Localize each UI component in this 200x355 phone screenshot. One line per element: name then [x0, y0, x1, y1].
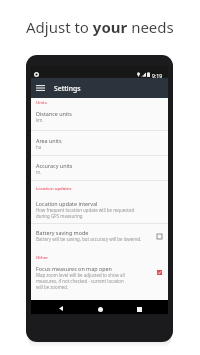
staticText: m.	[36, 169, 143, 175]
staticText: 9:19	[152, 72, 163, 79]
staticText: Location update interval	[36, 200, 98, 207]
staticText: km.	[36, 117, 143, 123]
staticText: Accuracy units	[36, 162, 73, 169]
staticText: Location updates	[36, 185, 72, 191]
button[interactable]: Recent apps	[133, 303, 145, 315]
button[interactable]: Home	[94, 303, 106, 315]
staticText: How frequent location update will be req…	[36, 207, 141, 219]
button[interactable]: Accuracy units	[31, 162, 168, 175]
staticText: Focus measures on map open	[36, 265, 112, 272]
staticText: Map zoom level will be adjusted to show …	[36, 272, 128, 290]
staticText: Area units	[36, 137, 62, 144]
button[interactable]: Back	[55, 302, 67, 314]
button[interactable]: Focus measures on map open	[155, 268, 164, 277]
button[interactable]: Distance units	[31, 110, 168, 123]
button[interactable]: Battery saving mode	[155, 232, 164, 241]
staticText: Battery will be saving, but accuracy wil…	[36, 236, 148, 242]
staticText: ha	[36, 144, 143, 150]
button[interactable]: Battery saving mode	[31, 229, 168, 242]
button[interactable]: Location update interval	[31, 200, 168, 219]
button[interactable]: Area units	[31, 137, 168, 150]
staticText: Other	[36, 254, 48, 260]
staticText: Units	[36, 99, 47, 105]
button[interactable]: Focus measures on map open	[31, 265, 168, 290]
staticText: Battery saving mode	[36, 229, 89, 236]
staticText: Adjust to your needs	[26, 17, 174, 37]
button[interactable]: Open navigation drawer	[33, 81, 47, 95]
staticText: Distance units	[36, 110, 72, 117]
staticText: Settings	[54, 84, 81, 93]
